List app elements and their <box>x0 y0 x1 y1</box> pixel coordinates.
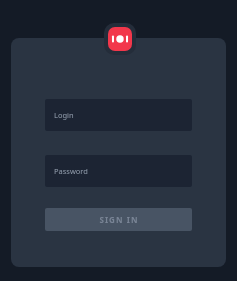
other: App logo <box>104 23 136 55</box>
button[interactable]: Password <box>45 155 192 187</box>
staticText: Password <box>54 166 88 176</box>
button[interactable]: SIGN IN <box>45 208 192 231</box>
staticText: Login <box>54 110 74 120</box>
button[interactable]: Login <box>45 99 192 131</box>
staticText: SIGN IN <box>99 214 139 225</box>
